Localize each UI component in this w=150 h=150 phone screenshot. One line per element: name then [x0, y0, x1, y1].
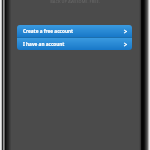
staticText: Create a free account [23, 28, 74, 34]
staticText: I have an account [23, 41, 65, 47]
button[interactable]: Create a free account [17, 25, 132, 37]
staticText: BACK UP AWESOME. FREE. [50, 0, 100, 4]
button[interactable]: I have an account [17, 38, 132, 50]
other: Continue [123, 42, 128, 47]
other: Continue [123, 29, 128, 34]
